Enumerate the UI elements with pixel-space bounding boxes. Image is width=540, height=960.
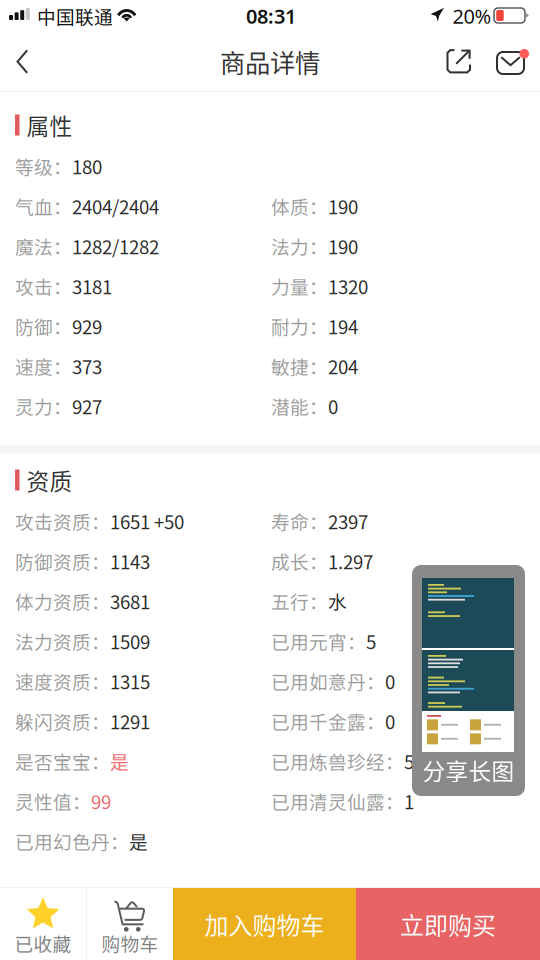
- staticText: 已用千金露：: [271, 707, 385, 734]
- button[interactable]: 已收藏: [0, 888, 86, 960]
- staticText: 法力：: [271, 232, 328, 259]
- staticText: 1291: [110, 707, 150, 734]
- staticText: 0: [385, 707, 395, 734]
- staticText: 水: [328, 587, 347, 614]
- button[interactable]: 消息: [492, 32, 534, 91]
- staticText: 敏捷：: [271, 352, 328, 379]
- staticText: 08:31: [246, 3, 296, 29]
- staticText: 1.297: [328, 547, 373, 574]
- staticText: 3181: [72, 272, 112, 299]
- staticText: 是否宝宝：: [15, 747, 110, 774]
- staticText: 体力资质：: [15, 587, 110, 614]
- staticText: 五行：: [271, 587, 328, 614]
- staticText: 速度：: [15, 352, 72, 379]
- staticText: 商品详情: [220, 43, 320, 80]
- staticText: 防御：: [15, 312, 72, 339]
- staticText: 1651 +50: [110, 507, 184, 534]
- staticText: 是: [110, 747, 129, 774]
- staticText: 3681: [110, 587, 150, 614]
- staticText: 5: [366, 627, 376, 654]
- staticText: 0: [328, 392, 338, 419]
- button[interactable]: 分享长图: [412, 565, 525, 796]
- staticText: 180: [72, 152, 102, 179]
- staticText: 是: [129, 827, 148, 854]
- staticText: 99: [91, 787, 111, 814]
- staticText: 已用如意丹：: [271, 667, 385, 694]
- staticText: 分享长图: [422, 754, 514, 786]
- button[interactable]: 立即购买: [356, 888, 540, 960]
- staticText: 20%: [452, 3, 491, 29]
- staticText: 寿命：: [271, 507, 328, 534]
- staticText: 加入购物车: [204, 907, 324, 941]
- staticText: 已用炼兽珍经：: [271, 747, 404, 774]
- staticText: 属性: [26, 109, 72, 141]
- staticText: 速度资质：: [15, 667, 110, 694]
- staticText: 耐力：: [271, 312, 328, 339]
- staticText: 躲闪资质：: [15, 707, 110, 734]
- staticText: 1143: [110, 547, 150, 574]
- staticText: 已用元宵：: [271, 627, 366, 654]
- staticText: 体质：: [271, 192, 328, 219]
- staticText: 已用幻色丹：: [15, 827, 129, 854]
- staticText: 194: [328, 312, 358, 339]
- staticText: 190: [328, 192, 358, 219]
- staticText: 灵性值：: [15, 787, 91, 814]
- staticText: 1: [404, 787, 414, 814]
- staticText: 190: [328, 232, 358, 259]
- staticText: 已用清灵仙露：: [271, 787, 404, 814]
- button[interactable]: 返回: [1, 32, 43, 91]
- staticText: 法力资质：: [15, 627, 110, 654]
- staticText: 1315: [110, 667, 150, 694]
- staticText: 气血：: [15, 192, 72, 219]
- staticText: 等级：: [15, 152, 72, 179]
- staticText: 1509: [110, 627, 150, 654]
- staticText: 1282/1282: [72, 232, 159, 259]
- staticText: 资质: [26, 464, 72, 496]
- staticText: 5: [404, 747, 414, 774]
- staticText: 927: [72, 392, 102, 419]
- staticText: 2397: [328, 507, 368, 534]
- staticText: 0: [385, 667, 395, 694]
- staticText: 1320: [328, 272, 368, 299]
- staticText: 373: [72, 352, 102, 379]
- staticText: 929: [72, 312, 102, 339]
- staticText: 中国联通: [37, 2, 113, 29]
- staticText: 魔法：: [15, 232, 72, 259]
- staticText: 成长：: [271, 547, 328, 574]
- staticText: 2404/2404: [72, 192, 159, 219]
- button[interactable]: 加入购物车: [173, 888, 356, 960]
- staticText: 灵力：: [15, 392, 72, 419]
- staticText: 攻击：: [15, 272, 72, 299]
- staticText: 购物车: [101, 929, 158, 956]
- staticText: 已收藏: [14, 929, 71, 956]
- staticText: 力量：: [271, 272, 328, 299]
- staticText: 204: [328, 352, 358, 379]
- button[interactable]: 购物车: [87, 888, 173, 960]
- staticText: 潜能：: [271, 392, 328, 419]
- staticText: 防御资质：: [15, 547, 110, 574]
- staticText: 立即购买: [400, 907, 496, 941]
- staticText: 攻击资质：: [15, 507, 110, 534]
- button[interactable]: 分享: [438, 32, 480, 91]
